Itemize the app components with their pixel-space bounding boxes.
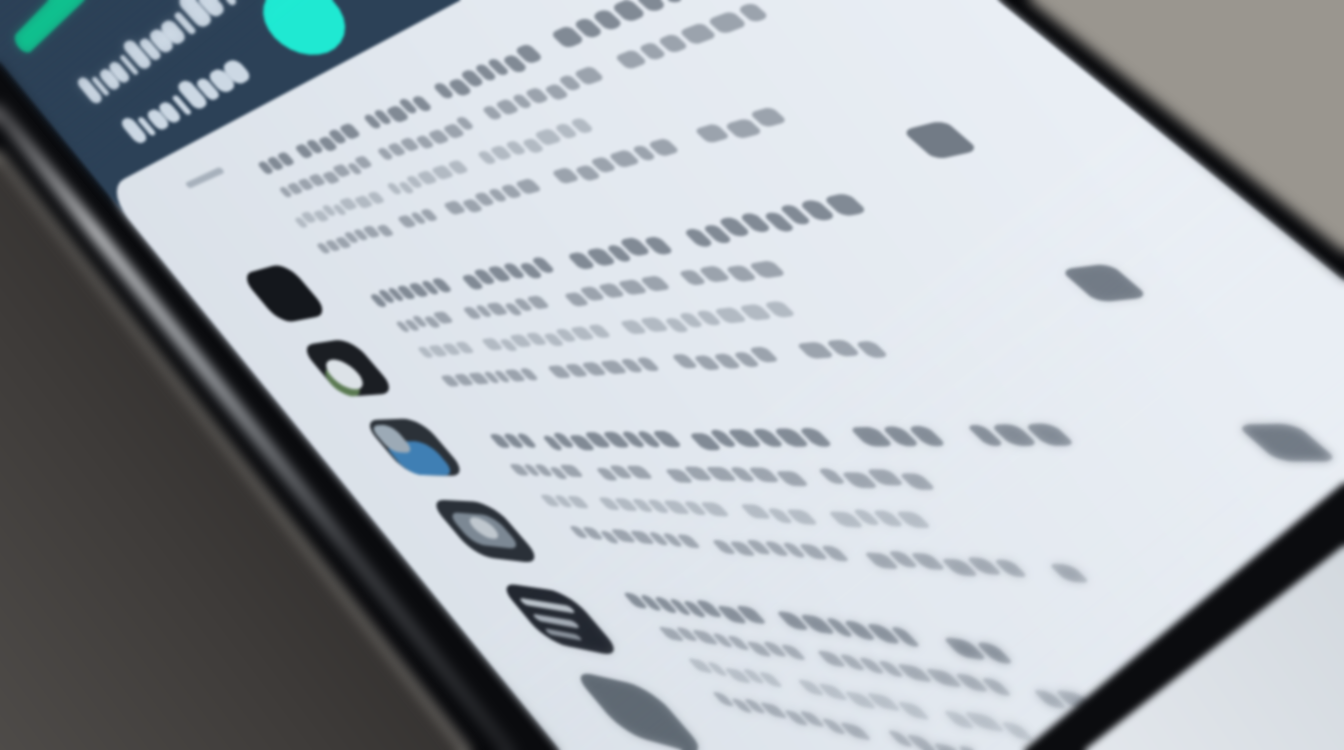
button[interactable]: Notification settings list: [0, 0, 1344, 750]
